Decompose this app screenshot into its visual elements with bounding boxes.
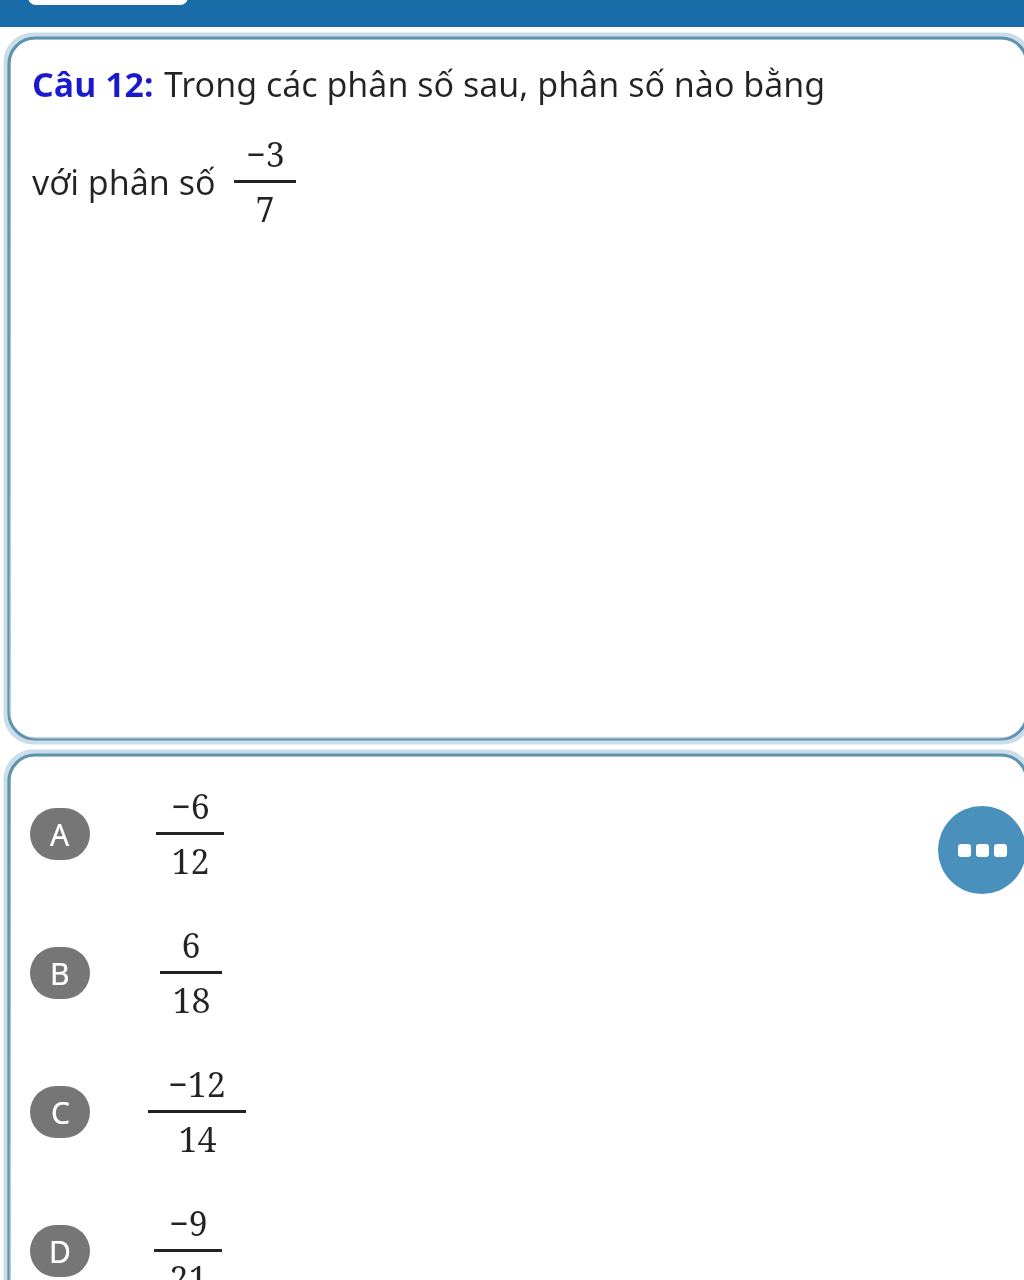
button[interactable]: B bbox=[6, 903, 1024, 1042]
staticText: −12 bbox=[168, 1061, 226, 1107]
staticText: C bbox=[51, 1092, 70, 1133]
staticText: −6 bbox=[171, 783, 210, 829]
staticText: Trong các phân số sau, phân số nào bằng bbox=[164, 61, 826, 107]
staticText: B bbox=[50, 953, 70, 994]
button[interactable]: More options bbox=[938, 806, 1024, 894]
staticText: −9 bbox=[169, 1200, 208, 1246]
button[interactable]: Câu 12: bbox=[6, 35, 1024, 742]
staticText: 6 bbox=[181, 922, 201, 968]
staticText: 18 bbox=[172, 977, 211, 1023]
staticText: 7 bbox=[255, 186, 275, 232]
staticText: D bbox=[49, 1231, 71, 1272]
staticText: 21 bbox=[169, 1255, 208, 1280]
button[interactable]: D bbox=[6, 1181, 1024, 1280]
button[interactable]: C bbox=[6, 1042, 1024, 1181]
button[interactable]: A bbox=[6, 764, 1024, 903]
staticText: với phân số bbox=[32, 159, 216, 205]
staticText: 12 bbox=[171, 838, 210, 884]
staticText: 14 bbox=[178, 1116, 217, 1162]
staticText: A bbox=[50, 814, 70, 855]
staticText: −3 bbox=[246, 131, 285, 177]
button[interactable]: Luyện tập bbox=[28, 0, 188, 5]
staticText: Câu 12: bbox=[32, 61, 154, 107]
